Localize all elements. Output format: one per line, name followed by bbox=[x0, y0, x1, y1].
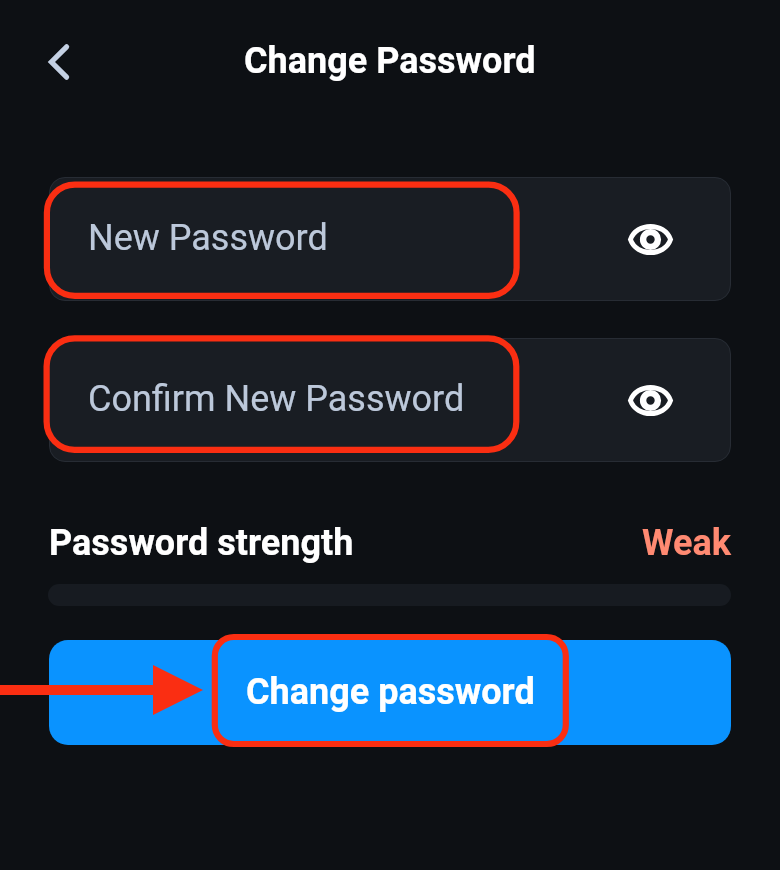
button[interactable]: New Password bbox=[49, 177, 731, 301]
button[interactable]: Confirm New Password bbox=[49, 338, 731, 462]
staticText: New Password bbox=[88, 217, 328, 259]
button[interactable]: Show password bbox=[621, 371, 679, 429]
staticText: Confirm New Password bbox=[88, 378, 465, 420]
staticText: Change Password bbox=[244, 40, 536, 82]
staticText: Weak bbox=[642, 522, 731, 564]
staticText: Change password bbox=[246, 671, 535, 713]
staticText: Password strength bbox=[49, 522, 354, 564]
button[interactable]: Back bbox=[25, 28, 93, 96]
button[interactable]: Change password bbox=[49, 640, 731, 745]
button[interactable]: Show password bbox=[621, 210, 679, 268]
